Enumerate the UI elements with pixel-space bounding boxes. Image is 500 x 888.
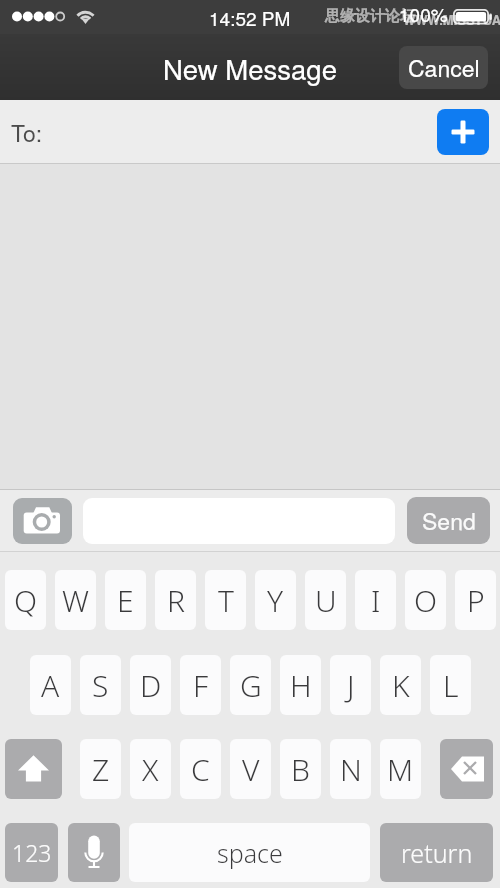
button[interactable]: V bbox=[230, 739, 271, 799]
button[interactable]: Y bbox=[255, 570, 296, 630]
staticText: 14:52 PM bbox=[209, 4, 291, 31]
staticText: P bbox=[467, 580, 485, 621]
staticText: V bbox=[242, 749, 260, 790]
button[interactable]: A bbox=[30, 655, 71, 715]
button[interactable]: E bbox=[105, 570, 146, 630]
staticText: Cancel bbox=[408, 51, 480, 84]
staticText: Z bbox=[92, 749, 110, 790]
button[interactable]: I bbox=[355, 570, 396, 630]
staticText: space bbox=[217, 836, 283, 870]
button[interactable]: F bbox=[180, 655, 221, 715]
staticText: S bbox=[92, 665, 109, 706]
button[interactable]: 123 bbox=[5, 823, 58, 882]
staticText: T bbox=[218, 580, 234, 621]
button[interactable]: Z bbox=[80, 739, 121, 799]
button[interactable]: Shift bbox=[5, 739, 62, 799]
staticText: New Message bbox=[163, 48, 337, 87]
button[interactable]: X bbox=[130, 739, 171, 799]
staticText: WWW.MISSYUAN.COM bbox=[403, 10, 500, 29]
staticText: J bbox=[347, 665, 355, 706]
button[interactable]: T bbox=[205, 570, 246, 630]
staticText: O bbox=[414, 580, 438, 621]
staticText: N bbox=[340, 749, 362, 790]
staticText: I bbox=[371, 580, 381, 621]
button[interactable]: N bbox=[330, 739, 371, 799]
staticText: return bbox=[401, 836, 473, 870]
button[interactable]: Dictation bbox=[68, 823, 120, 882]
staticText: E bbox=[117, 580, 134, 621]
button[interactable]: K bbox=[380, 655, 421, 715]
staticText: U bbox=[315, 580, 337, 621]
staticText: Q bbox=[14, 580, 38, 621]
button[interactable]: Send bbox=[407, 497, 490, 544]
staticText: C bbox=[191, 749, 210, 790]
staticText: W bbox=[62, 580, 89, 621]
staticText: Y bbox=[267, 580, 284, 621]
staticText: F bbox=[193, 665, 209, 706]
staticText: D bbox=[140, 665, 162, 706]
button[interactable]: U bbox=[305, 570, 346, 630]
staticText: Send bbox=[422, 504, 476, 537]
button[interactable]: space bbox=[129, 823, 370, 882]
staticText: L bbox=[443, 665, 459, 706]
button[interactable]: Q bbox=[5, 570, 46, 630]
button[interactable]: R bbox=[155, 570, 196, 630]
button[interactable]: Backspace bbox=[440, 739, 493, 799]
staticText: X bbox=[142, 749, 159, 790]
button[interactable]: L bbox=[430, 655, 471, 715]
staticText: M bbox=[387, 749, 414, 790]
button[interactable]: G bbox=[230, 655, 271, 715]
button[interactable]: O bbox=[405, 570, 446, 630]
button[interactable]: M bbox=[380, 739, 421, 799]
button[interactable]: D bbox=[130, 655, 171, 715]
staticText: 思缘设计论坛 bbox=[325, 7, 415, 26]
button[interactable]: return bbox=[380, 823, 493, 882]
button[interactable]: S bbox=[80, 655, 121, 715]
button[interactable]: P bbox=[455, 570, 496, 630]
staticText: H bbox=[290, 665, 312, 706]
button[interactable]: C bbox=[180, 739, 221, 799]
button[interactable]: W bbox=[55, 570, 96, 630]
staticText: A bbox=[41, 665, 60, 706]
button[interactable]: Add recipient bbox=[437, 109, 489, 155]
staticText: B bbox=[291, 749, 310, 790]
staticText: G bbox=[240, 665, 262, 706]
staticText: R bbox=[167, 580, 185, 621]
button[interactable]: J bbox=[330, 655, 371, 715]
staticText: 123 bbox=[12, 837, 52, 868]
staticText: K bbox=[392, 665, 410, 706]
button[interactable]: B bbox=[280, 739, 321, 799]
staticText: To: bbox=[11, 116, 43, 149]
staticText: 100% bbox=[399, 0, 448, 27]
button[interactable]: Cancel bbox=[399, 46, 488, 89]
button[interactable]: H bbox=[280, 655, 321, 715]
button[interactable]: Camera bbox=[13, 498, 72, 544]
